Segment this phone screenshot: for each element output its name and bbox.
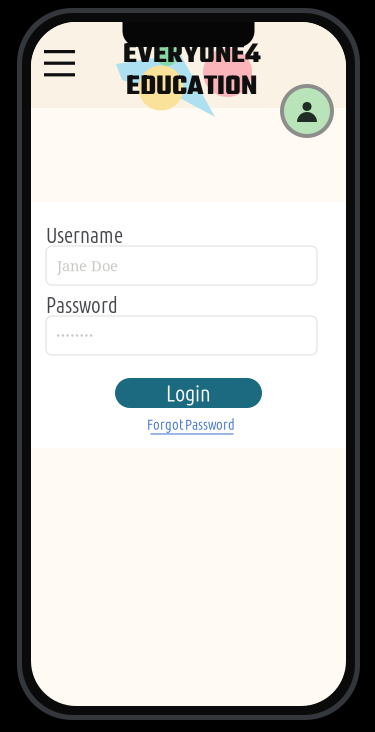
staticText: Forgot Password xyxy=(147,416,235,432)
staticText: Username xyxy=(46,223,123,247)
button[interactable]: Forgot Password xyxy=(147,416,237,434)
button[interactable]: Login xyxy=(115,378,262,408)
button[interactable]: Menu xyxy=(35,41,84,85)
staticText: EVERYONE4 xyxy=(123,33,261,77)
staticText: EDUCATION xyxy=(126,65,257,109)
button[interactable]: Account xyxy=(278,82,336,140)
staticText: Login xyxy=(166,380,211,406)
staticText: Password xyxy=(46,293,118,317)
staticText: Jane Doe xyxy=(57,255,118,275)
